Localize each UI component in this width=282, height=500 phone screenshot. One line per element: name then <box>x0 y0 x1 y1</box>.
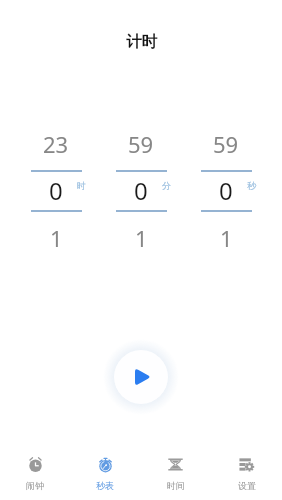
staticText: 59 <box>128 129 154 157</box>
button[interactable]: 设置 <box>211 448 282 494</box>
staticText: 秒 <box>247 180 256 191</box>
staticText: 59 <box>213 129 239 157</box>
button[interactable]: 秒表 <box>70 448 140 494</box>
staticText: 0 <box>219 174 233 202</box>
staticText: 1 <box>220 223 233 251</box>
staticText: 0 <box>134 174 148 202</box>
staticText: 计时 <box>126 32 157 52</box>
staticText: 设置 <box>238 480 256 491</box>
staticText: 时间 <box>167 480 185 491</box>
button[interactable]: 闹钟 <box>0 448 70 494</box>
button[interactable]: Start timer <box>103 339 179 415</box>
button[interactable]: Select 时 value <box>18 129 94 249</box>
staticText: 秒表 <box>96 480 114 491</box>
staticText: 分 <box>162 180 171 191</box>
staticText: 0 <box>49 174 63 202</box>
button[interactable]: Select 秒 value <box>188 129 264 249</box>
button[interactable]: Select 分 value <box>103 129 179 249</box>
staticText: 时 <box>77 180 86 191</box>
staticText: 闹钟 <box>26 480 44 491</box>
staticText: 1 <box>135 223 148 251</box>
staticText: 1 <box>50 223 63 251</box>
staticText: 23 <box>43 129 69 157</box>
button[interactable]: 时间 <box>140 448 211 494</box>
